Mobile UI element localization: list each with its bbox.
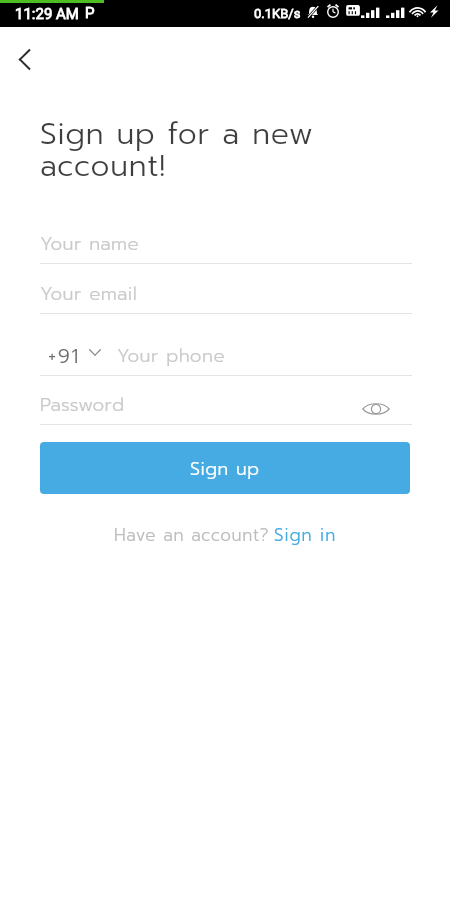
staticText: Your email [40,280,138,308]
staticText: +91 [48,341,80,371]
staticText: 11:29 AM [15,5,79,23]
staticText: Sign in [274,522,337,548]
button[interactable]: Sign up [40,442,410,494]
staticText: Your name [40,230,140,258]
button[interactable]: Back [1,36,47,82]
staticText: Have an account? [114,522,269,548]
button[interactable]: Password [40,388,412,421]
staticText: 0.1KB/s [254,6,301,21]
button[interactable]: Sign in [274,522,337,548]
staticText: Sign up [190,455,260,482]
staticText: Your phone [117,342,226,370]
staticText: P [85,4,95,22]
button[interactable]: Your email [40,277,412,314]
staticText: Password [40,391,125,419]
button[interactable]: +91 [48,341,101,371]
button[interactable]: Your name [40,227,412,264]
staticText: Sign up for a new account! [40,111,314,189]
button[interactable]: Show password [358,391,394,427]
